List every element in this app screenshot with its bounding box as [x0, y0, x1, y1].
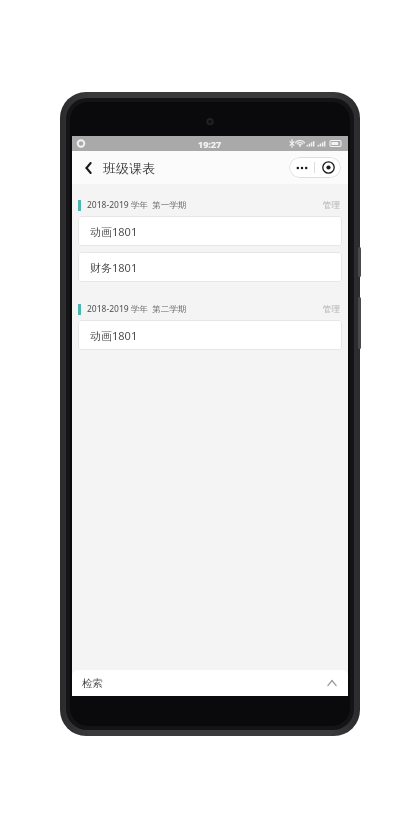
button[interactable]: 管理 [321, 198, 342, 213]
staticText: 动画1801 [90, 328, 138, 343]
staticText: 财务1801 [90, 260, 138, 275]
staticText: 动画1801 [90, 224, 138, 239]
staticText: 19:27 [198, 138, 222, 150]
other: Expand search [326, 677, 338, 689]
staticText: 2018-2019 学年 第一学期 [87, 199, 187, 211]
staticText: 管理 [323, 304, 340, 315]
staticText: 管理 [323, 200, 340, 211]
button[interactable]: Back [79, 158, 99, 178]
button[interactable]: 动画1801 [78, 320, 342, 350]
staticText: 2018-2019 学年 第二学期 [87, 303, 187, 315]
button[interactable]: 检索 [72, 670, 348, 696]
button[interactable]: 动画1801 [78, 216, 342, 246]
staticText: 班级课表 [103, 160, 155, 176]
button[interactable]: 财务1801 [78, 252, 342, 282]
button[interactable]: 管理 [321, 302, 342, 317]
button[interactable]: Close mini program [315, 157, 341, 178]
button[interactable]: More options [289, 157, 314, 178]
staticText: 检索 [82, 677, 103, 690]
